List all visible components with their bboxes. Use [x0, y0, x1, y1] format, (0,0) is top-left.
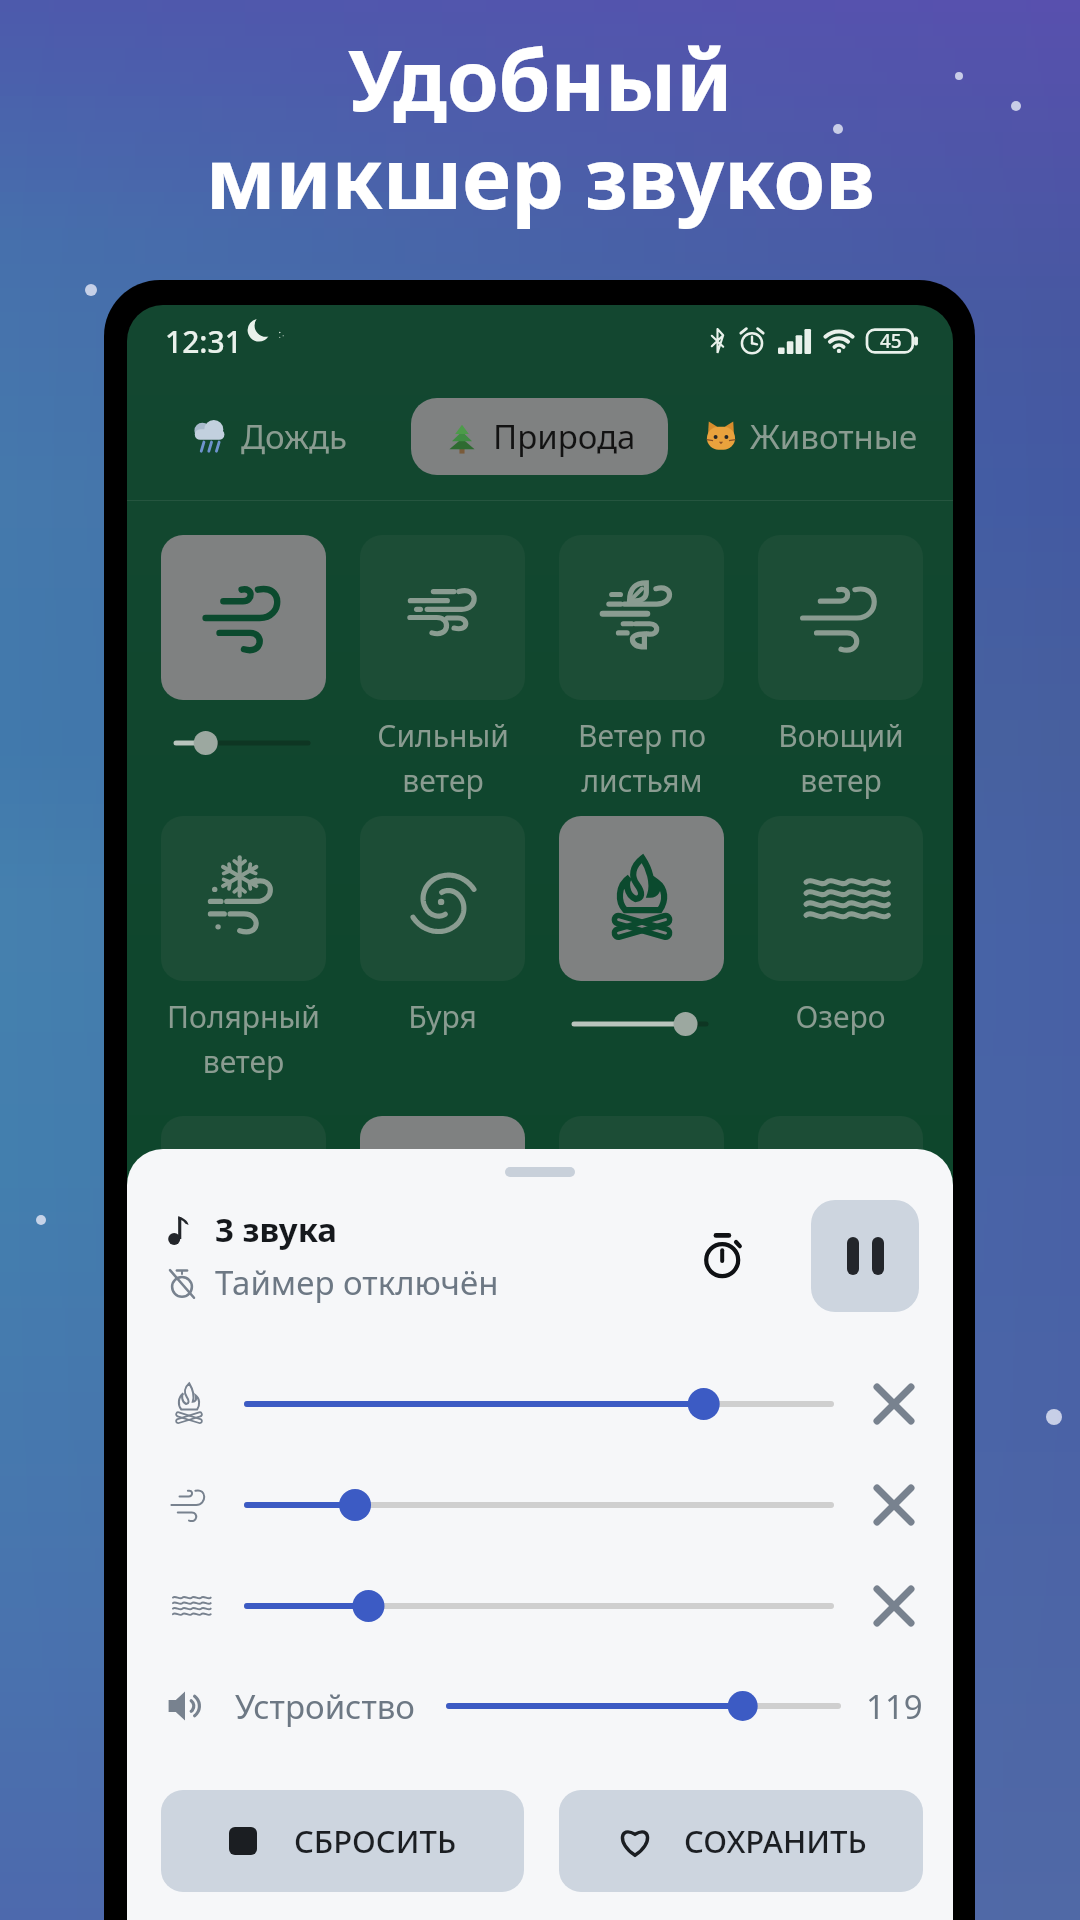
- button[interactable]: СОХРАНИТЬ: [559, 1790, 923, 1892]
- button[interactable]: Пауза: [811, 1200, 919, 1312]
- staticText: Животные: [750, 414, 918, 459]
- button[interactable]: Ветер: [161, 535, 326, 700]
- staticText: Полярный ветер: [167, 996, 320, 1082]
- button[interactable]: Костёр: [559, 816, 724, 981]
- staticText: Дождь: [241, 414, 348, 459]
- button[interactable]: Ветер по листьям: [559, 535, 724, 700]
- staticText: Ветер по листьям: [578, 715, 706, 801]
- button[interactable]: Удалить: [867, 1478, 921, 1532]
- staticText: Озеро: [795, 996, 886, 1037]
- staticText: Сильный ветер: [377, 715, 509, 801]
- button[interactable]: Природа: [411, 398, 668, 475]
- button[interactable]: Животные: [668, 381, 953, 491]
- button[interactable]: Дождь: [127, 381, 411, 491]
- button[interactable]: Буря: [360, 816, 525, 981]
- staticText: 119: [866, 1684, 923, 1729]
- button[interactable]: Удалить: [867, 1377, 921, 1431]
- staticText: СБРОСИТЬ: [294, 1820, 457, 1862]
- button[interactable]: Таймер: [691, 1219, 765, 1293]
- staticText: Таймер отключён: [215, 1260, 499, 1305]
- button[interactable]: Звук: [559, 1116, 724, 1176]
- button[interactable]: Полярный ветер: [161, 816, 326, 981]
- staticText: Устройство: [235, 1684, 415, 1729]
- staticText: Буря: [408, 996, 477, 1037]
- staticText: Природа: [493, 414, 636, 459]
- staticText: 12:31: [165, 321, 242, 362]
- button[interactable]: Звук: [758, 1116, 923, 1176]
- button[interactable]: Звук: [360, 1116, 525, 1176]
- button[interactable]: Звук: [161, 1116, 326, 1176]
- staticText: 45: [880, 328, 902, 354]
- button[interactable]: СБРОСИТЬ: [161, 1790, 524, 1892]
- staticText: Воющий ветер: [778, 715, 904, 801]
- button[interactable]: Озеро: [758, 816, 923, 981]
- staticText: 3 звука: [215, 1207, 337, 1252]
- button[interactable]: Сильный ветер: [360, 535, 525, 700]
- staticText: Удобный микшер звуков: [205, 21, 875, 234]
- staticText: СОХРАНИТЬ: [684, 1820, 867, 1862]
- button[interactable]: Воющий ветер: [758, 535, 923, 700]
- button[interactable]: Удалить: [867, 1579, 921, 1633]
